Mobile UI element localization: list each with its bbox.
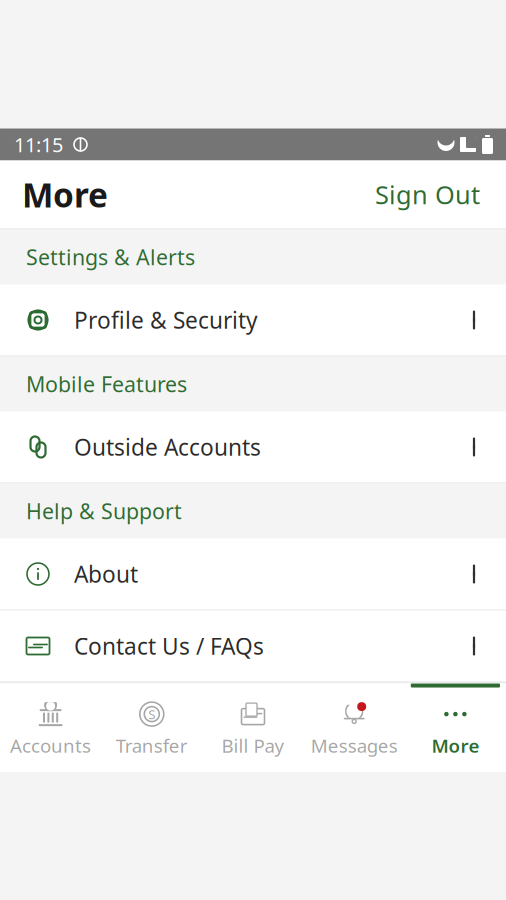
staticText: Bill Pay — [221, 733, 284, 758]
button[interactable]: Outside Accounts — [0, 411, 506, 483]
staticText: Messages — [311, 733, 398, 758]
staticText: Sign Out — [375, 178, 480, 211]
button[interactable]: More — [405, 683, 506, 771]
button[interactable]: Contact Us / FAQs — [0, 610, 506, 682]
staticText: About — [74, 559, 138, 589]
staticText: More — [431, 733, 479, 758]
staticText: S — [148, 705, 155, 723]
button[interactable]: About — [0, 538, 506, 610]
staticText: 11:15 — [14, 131, 63, 158]
button[interactable]: Sign Out — [363, 172, 492, 217]
button[interactable]: S — [101, 683, 202, 771]
staticText: Contact Us / FAQs — [74, 631, 264, 661]
staticText: Help & Support — [26, 497, 182, 525]
staticText: Settings & Alerts — [26, 243, 195, 271]
button[interactable]: Profile & Security — [0, 284, 506, 356]
staticText: More — [22, 172, 108, 217]
button[interactable]: Accounts — [0, 683, 101, 771]
staticText: Mobile Features — [26, 370, 187, 398]
button[interactable]: Bill Pay — [202, 683, 304, 771]
button[interactable]: Messages — [304, 683, 405, 771]
staticText: Transfer — [116, 733, 188, 758]
staticText: Accounts — [10, 733, 91, 758]
staticText: Profile & Security — [74, 305, 258, 335]
staticText: Outside Accounts — [74, 432, 261, 462]
